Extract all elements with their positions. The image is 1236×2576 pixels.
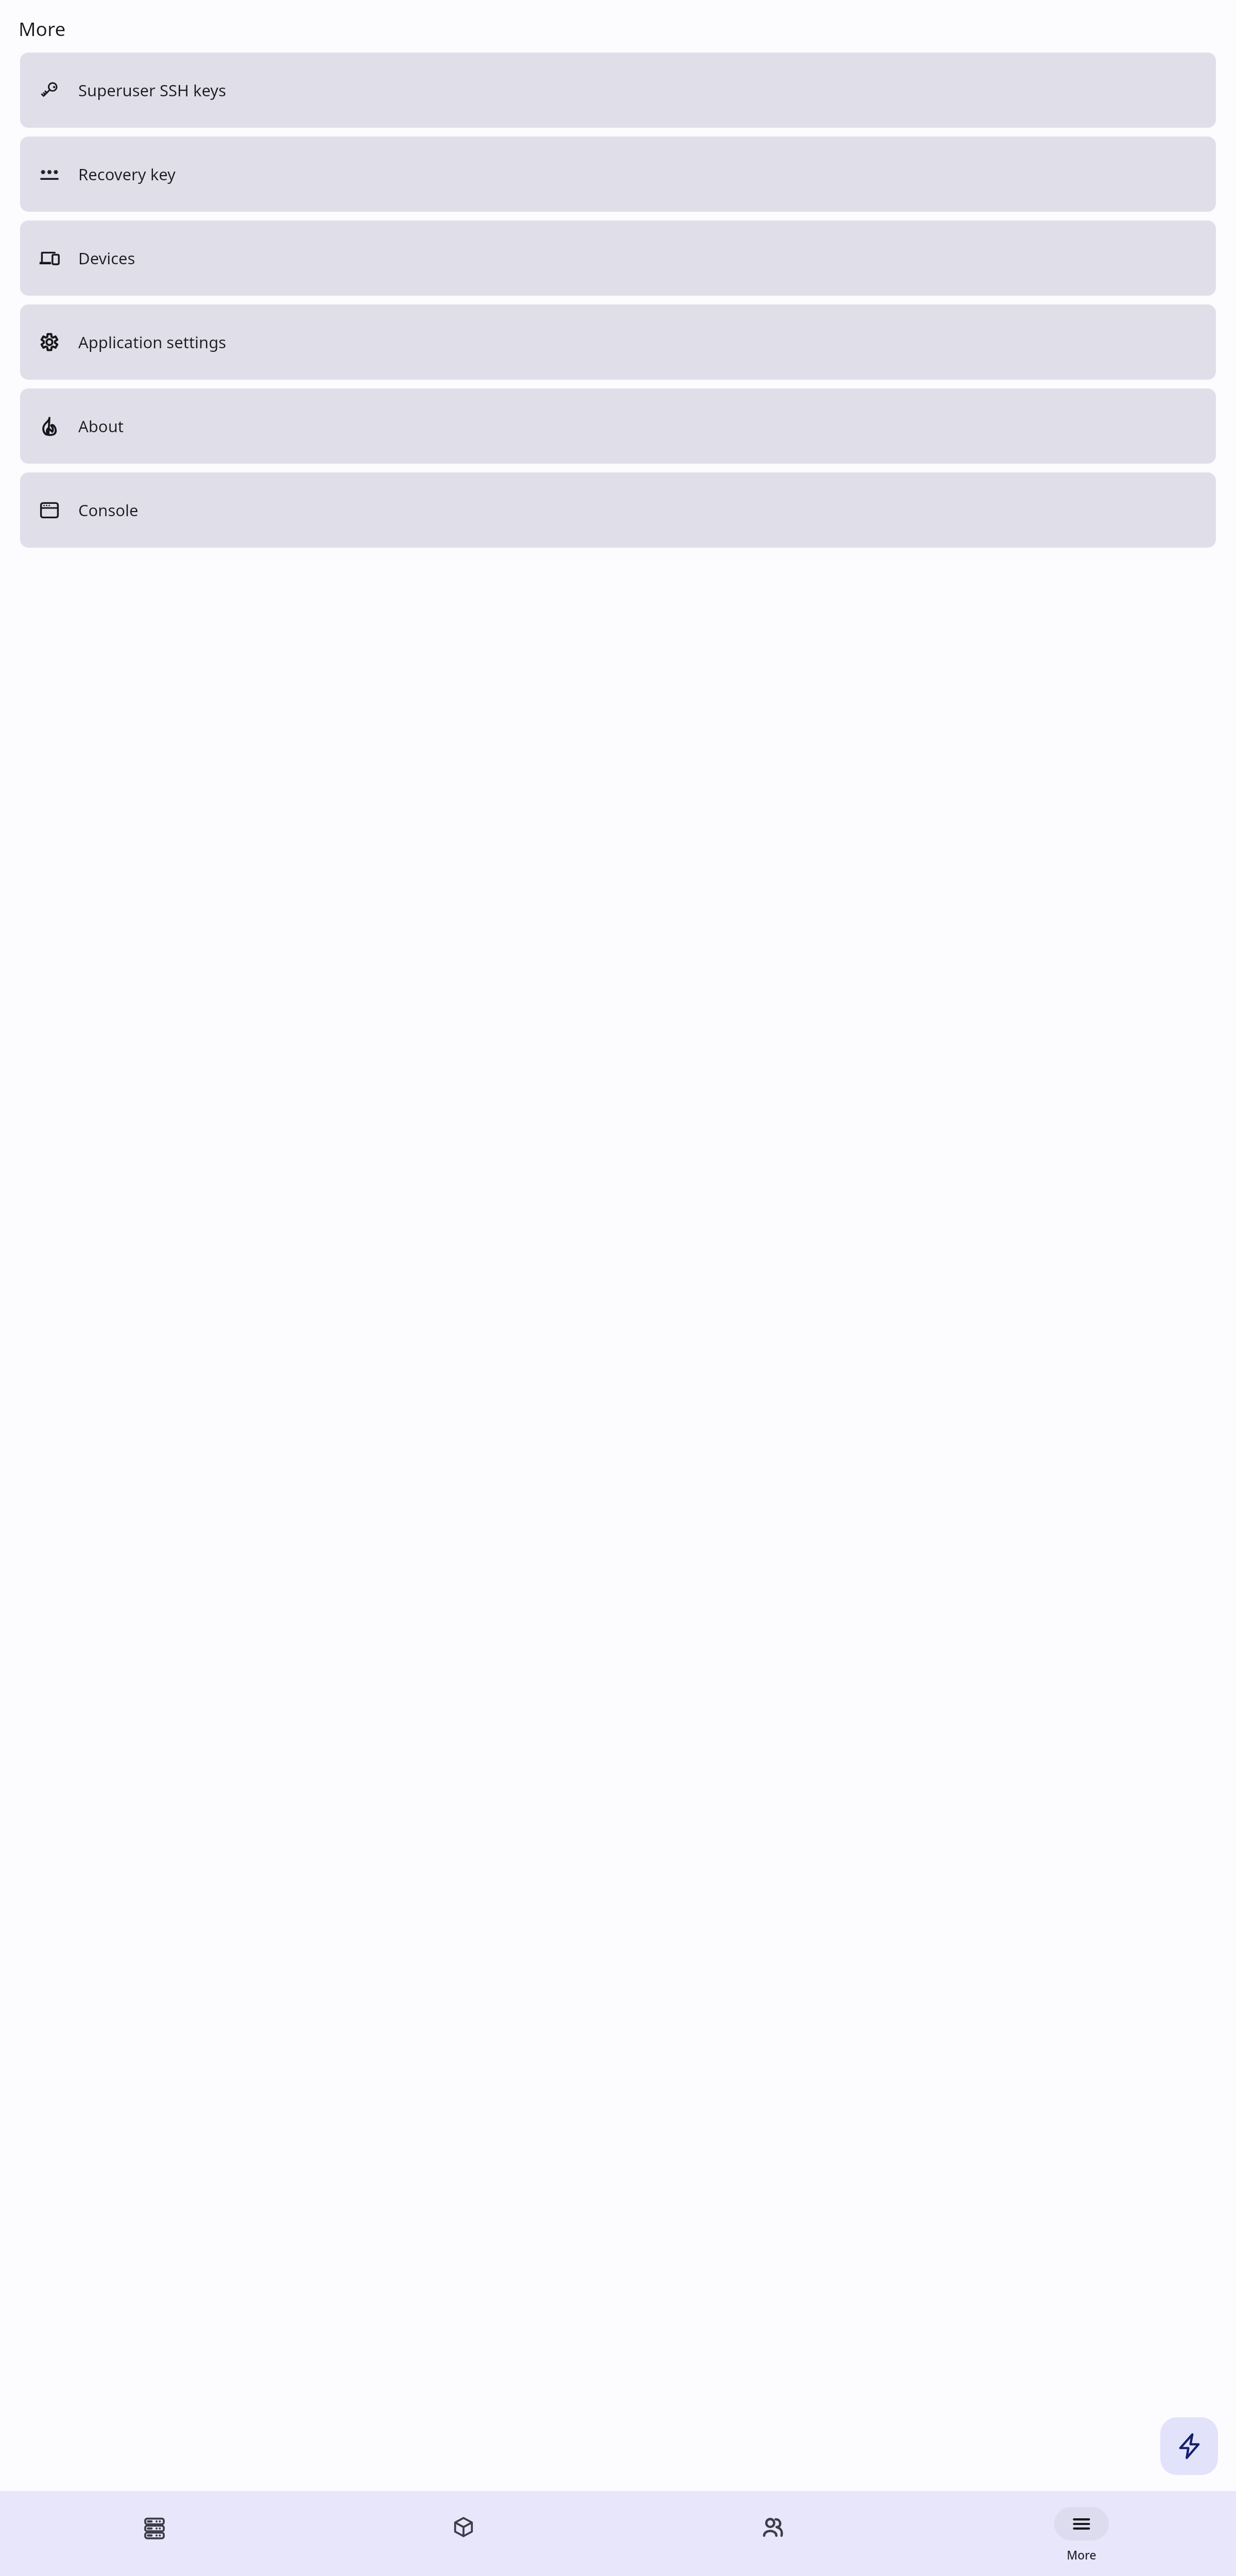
staticText: More — [19, 15, 66, 41]
button[interactable]: More — [927, 2491, 1236, 2576]
staticText: Console — [78, 499, 139, 521]
button[interactable]: Quick action — [1160, 2417, 1218, 2475]
staticText: About — [78, 415, 124, 437]
button[interactable]: Application settings — [20, 304, 1216, 380]
staticText: Application settings — [78, 331, 227, 353]
staticText: More — [1067, 2547, 1096, 2563]
button[interactable]: Team — [618, 2491, 927, 2576]
button[interactable]: Servers — [0, 2491, 309, 2576]
button[interactable]: Superuser SSH keys — [20, 53, 1216, 128]
button[interactable]: Console — [20, 472, 1216, 548]
button[interactable]: Recovery key — [20, 137, 1216, 212]
staticText: Superuser SSH keys — [78, 79, 227, 101]
button[interactable]: Apps — [309, 2491, 618, 2576]
staticText: Recovery key — [78, 163, 176, 185]
button[interactable]: Devices — [20, 221, 1216, 296]
button[interactable]: About — [20, 388, 1216, 464]
staticText: Devices — [78, 247, 135, 269]
